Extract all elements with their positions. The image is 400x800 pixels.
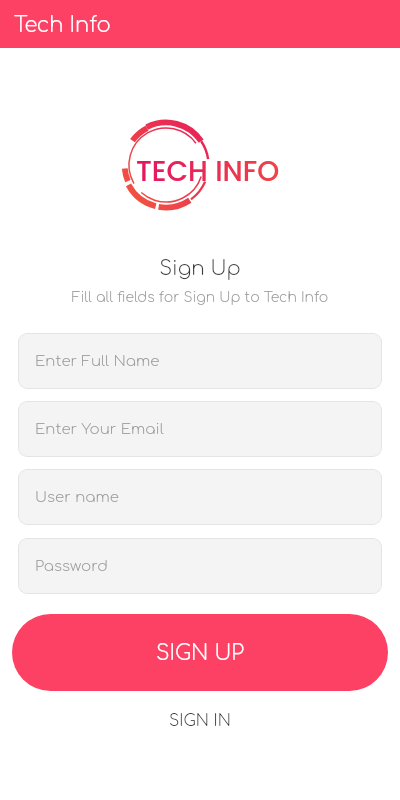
staticText: SIGN IN (169, 712, 231, 730)
button[interactable]: SIGN UP (12, 614, 388, 691)
staticText: Sign Up (0, 257, 400, 279)
staticText: Enter Your Email (35, 421, 164, 438)
button[interactable]: User name (18, 469, 382, 525)
staticText: Tech Info (14, 13, 111, 36)
staticText: Enter Full Name (35, 353, 160, 370)
button[interactable]: Enter Full Name (18, 333, 382, 389)
staticText: User name (35, 489, 119, 506)
staticText: Password (35, 558, 108, 575)
staticText: TECH INFO (136, 152, 280, 191)
button[interactable]: Password (18, 538, 382, 594)
staticText: Fill all fields for Sign Up to Tech Info (0, 290, 400, 306)
button[interactable]: Tech Info (0, 0, 400, 48)
button[interactable]: Enter Your Email (18, 401, 382, 457)
staticText: SIGN UP (156, 641, 245, 664)
button[interactable]: SIGN IN (163, 709, 237, 733)
